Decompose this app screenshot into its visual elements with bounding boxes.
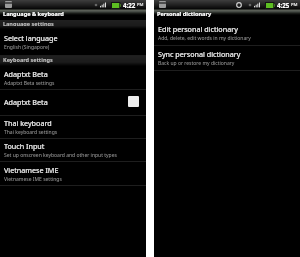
staticText: Set up onscreen keyboard and other input…: [4, 152, 117, 159]
other: Notifications: [159, 1, 166, 8]
button[interactable]: Thai keyboard: [0, 116, 146, 138]
button[interactable]: Adaptxt Beta: [0, 90, 146, 115]
staticText: English (Singapore): [4, 44, 50, 51]
staticText: Back up or restore my dictionary: [158, 60, 235, 67]
staticText: Adaptxt Beta: [4, 69, 48, 79]
staticText: Vietnamese IME settings: [4, 176, 62, 183]
staticText: Personal dictionary: [157, 10, 212, 18]
staticText: Vietnamese IME: [4, 165, 59, 175]
staticText: Language & keyboard: [3, 10, 64, 18]
staticText: Adaptxt Beta: [4, 97, 48, 107]
staticText: Add, delete, edit words in my dictionary: [158, 35, 251, 42]
button[interactable]: Edit personal dictionary: [154, 20, 300, 45]
staticText: 4:22: [123, 1, 136, 9]
staticText: PM: [137, 2, 144, 8]
staticText: Touch Input: [4, 141, 45, 151]
staticText: Adaptxt Beta settings: [4, 80, 55, 87]
staticText: Keyboard settings: [3, 56, 53, 63]
staticText: Edit personal dictionary: [158, 24, 238, 34]
staticText: Select language: [4, 33, 58, 43]
staticText: 4:25: [277, 1, 290, 9]
staticText: Thai keyboard settings: [4, 129, 58, 136]
button[interactable]: Touch Input: [0, 139, 146, 161]
staticText: PM: [291, 2, 298, 8]
button[interactable]: Select language: [0, 29, 146, 55]
button[interactable]: Sync personal dictionary: [154, 46, 300, 70]
staticText: Thai keyboard: [4, 118, 52, 128]
staticText: Sync personal dictionary: [158, 49, 241, 59]
staticText: Language settings: [3, 20, 54, 26]
other: Notifications: [5, 1, 12, 8]
button[interactable]: Adaptxt Beta: [0, 66, 146, 89]
button[interactable]: Vietnamese IME: [0, 162, 146, 185]
